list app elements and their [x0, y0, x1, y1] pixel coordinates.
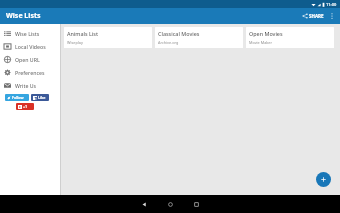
staticText: Preferences: [15, 69, 45, 76]
button[interactable]: Preferences: [0, 66, 61, 79]
button[interactable]: Local Videos: [0, 40, 61, 53]
staticText: Wise Lists: [15, 30, 40, 37]
button[interactable]: +1: [16, 103, 34, 110]
button[interactable]: Write Us: [0, 79, 61, 92]
staticText: Local Videos: [15, 43, 46, 50]
button[interactable]: Add list: [316, 172, 331, 187]
button[interactable]: Recents: [183, 195, 209, 213]
staticText: Wiseplay: [67, 40, 83, 45]
staticText: Movie Maker: [249, 40, 273, 45]
staticText: Classical Movies: [158, 30, 200, 37]
button[interactable]: More options: [326, 10, 338, 22]
button[interactable]: Back: [131, 195, 157, 213]
button[interactable]: Open Movies: [246, 27, 334, 48]
staticText: Follow us: [12, 95, 27, 100]
button[interactable]: SHARE: [300, 11, 326, 21]
staticText: Write Us: [15, 82, 37, 89]
button[interactable]: Classical Movies: [155, 27, 243, 48]
staticText: 11:00: [326, 2, 337, 7]
button[interactable]: Follow us: [5, 94, 29, 101]
staticText: Wise Lists: [6, 11, 41, 21]
staticText: Animals List: [67, 30, 99, 37]
staticText: Like: [38, 95, 46, 100]
staticText: Archive.org: [158, 40, 179, 45]
button[interactable]: Open URL: [0, 53, 61, 66]
button[interactable]: Wise Lists: [0, 27, 61, 40]
staticText: SHARE: [309, 13, 324, 19]
button[interactable]: Animals List: [64, 27, 152, 48]
button[interactable]: Home: [157, 195, 183, 213]
staticText: Open URL: [15, 56, 40, 63]
staticText: +1: [23, 104, 28, 109]
staticText: Open Movies: [249, 30, 283, 37]
button[interactable]: Like: [31, 94, 49, 101]
